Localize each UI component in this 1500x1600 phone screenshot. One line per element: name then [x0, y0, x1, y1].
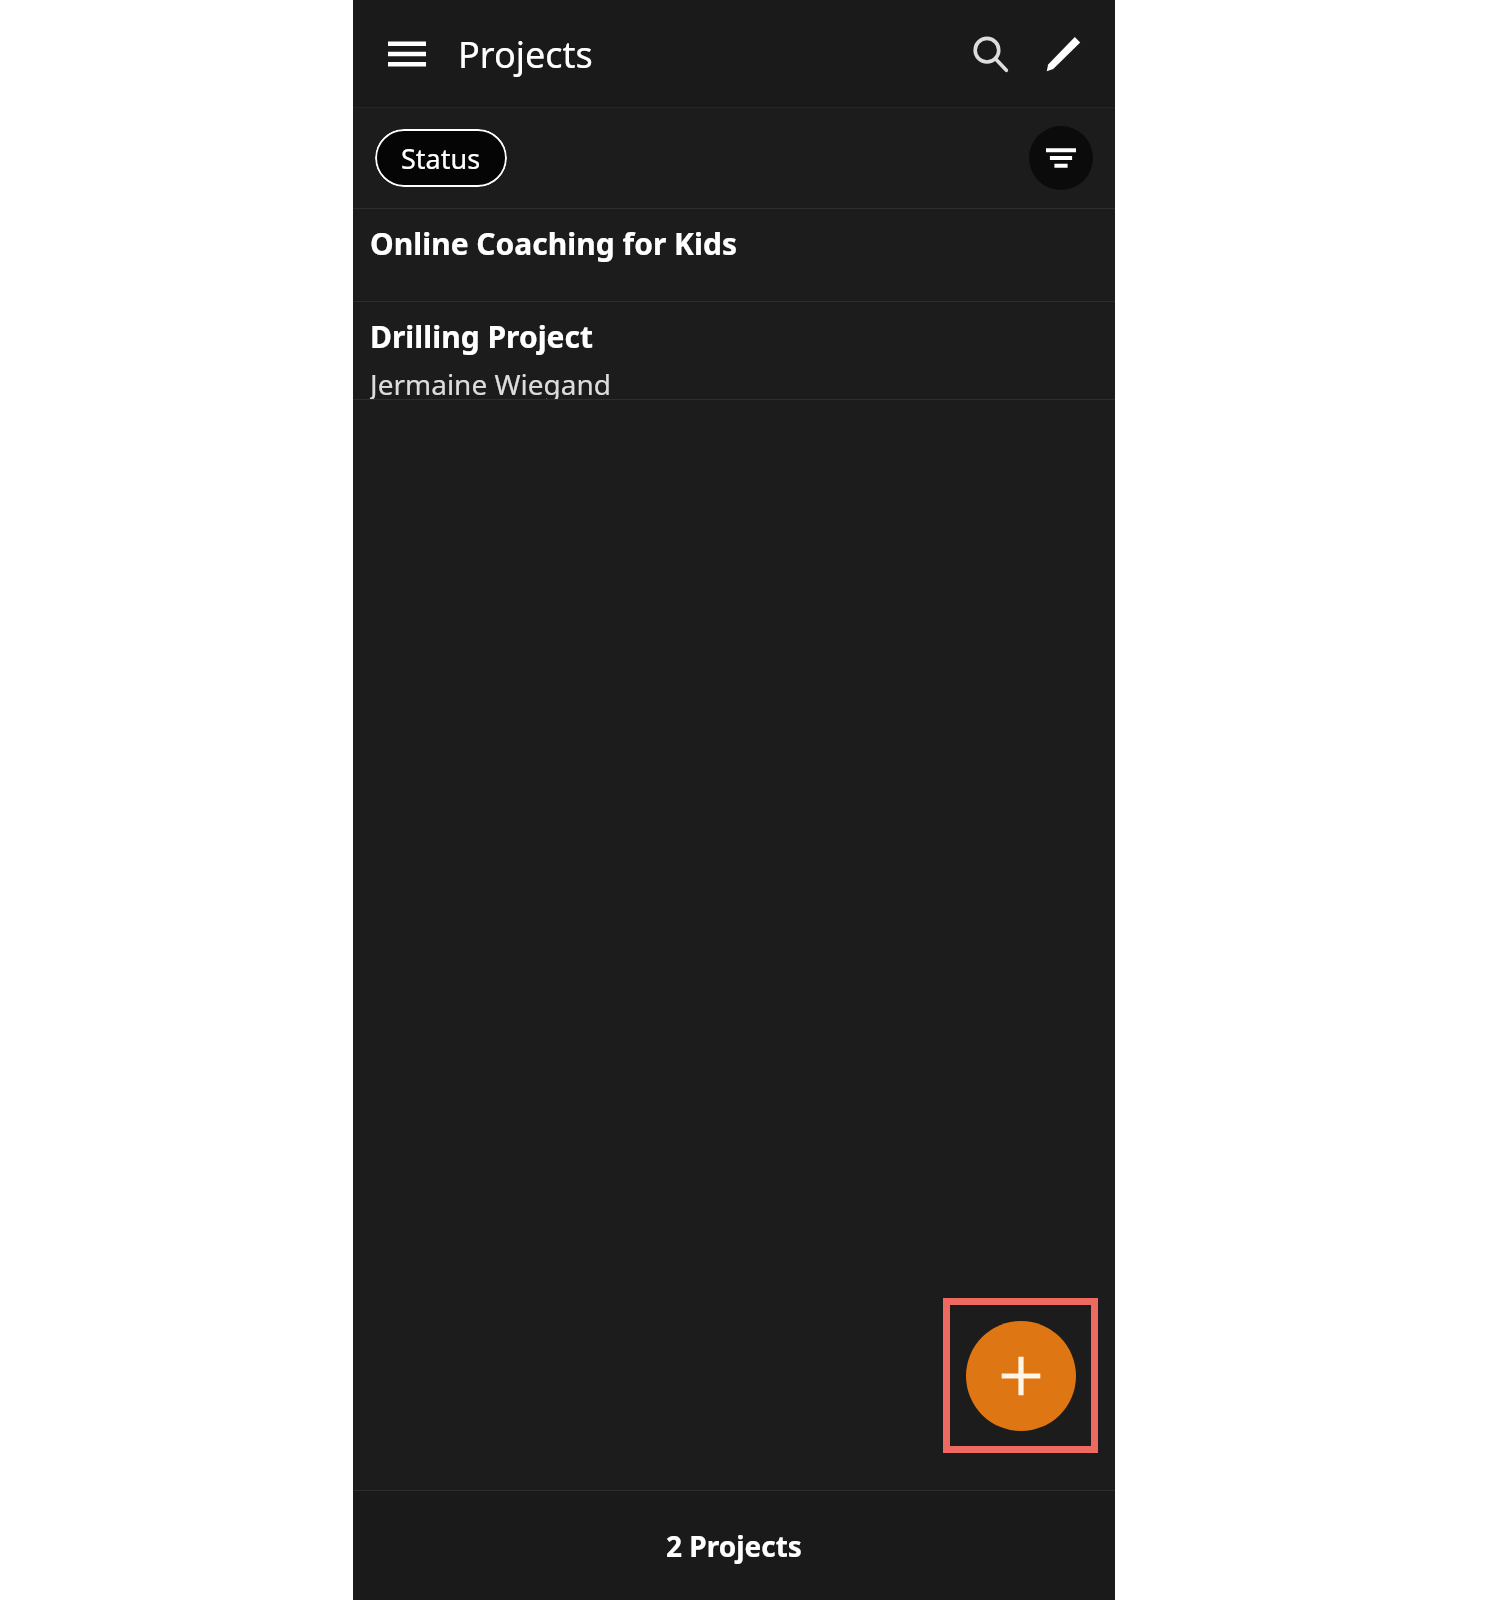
button[interactable]: Open navigation menu	[375, 22, 439, 86]
button[interactable]: Edit	[1027, 17, 1101, 91]
button[interactable]: Status	[375, 129, 507, 187]
staticText: Jermaine Wiegand	[370, 365, 611, 399]
staticText: Status	[401, 140, 481, 177]
button[interactable]: Filter options	[1029, 126, 1093, 190]
button[interactable]: Drilling Project	[353, 302, 1115, 399]
staticText: Projects	[458, 30, 593, 79]
button[interactable]: 2 Projects	[353, 1491, 1115, 1600]
button[interactable]: Add project	[966, 1321, 1076, 1431]
staticText: 2 Projects	[666, 1527, 802, 1565]
staticText: Online Coaching for Kids	[370, 223, 738, 264]
staticText: Drilling Project	[370, 316, 593, 357]
button[interactable]: Search	[953, 17, 1027, 91]
button[interactable]: Online Coaching for Kids	[353, 209, 1115, 301]
